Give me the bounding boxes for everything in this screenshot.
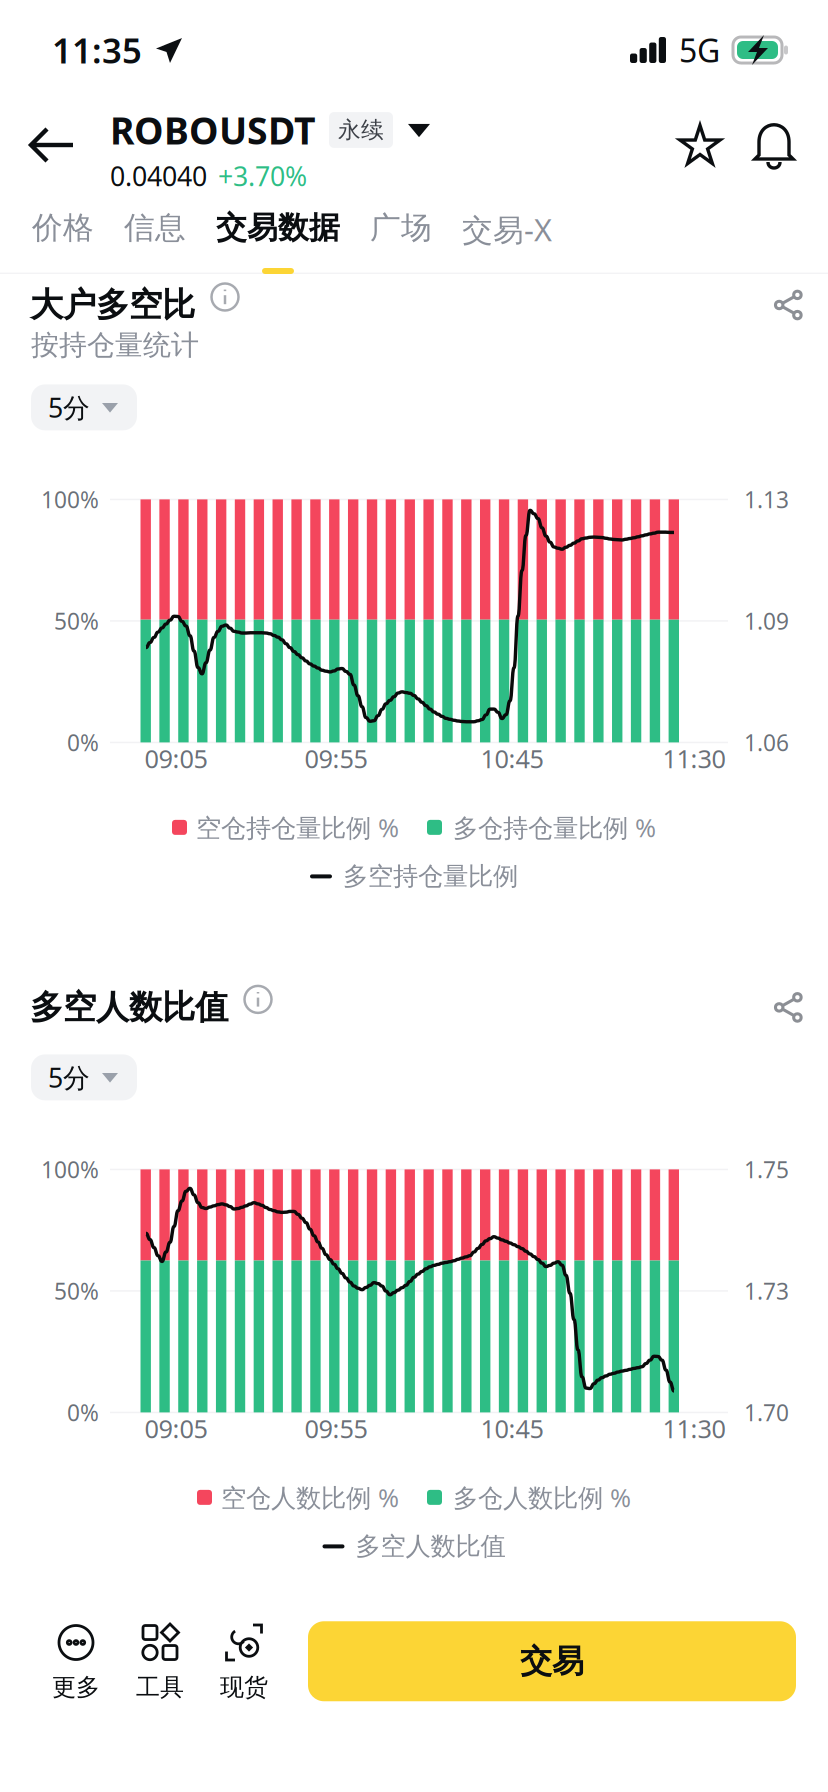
staticText: 50%: [54, 606, 99, 636]
staticText: 1.06: [744, 727, 789, 757]
staticText: 50%: [54, 1276, 99, 1306]
staticText: 1.73: [744, 1276, 789, 1306]
staticText: 空仓持仓量比例 %: [196, 811, 399, 844]
button[interactable]: 交易-X: [447, 196, 567, 274]
staticText: 5分: [48, 1060, 90, 1095]
staticText: 11:35: [52, 27, 142, 73]
staticText: 信息: [124, 209, 186, 247]
staticText: 1.13: [744, 484, 789, 514]
button[interactable]: 信息: [109, 196, 201, 274]
staticText: 大户多空比: [30, 284, 195, 325]
button[interactable]: 更多: [34, 1620, 118, 1702]
staticText: 多空人数比值: [355, 1531, 505, 1562]
button[interactable]: Share: [764, 281, 812, 329]
staticText: 10:45: [480, 742, 543, 775]
staticText: 现货: [220, 1672, 268, 1702]
staticText: 广场: [370, 209, 432, 247]
staticText: 09:55: [304, 742, 367, 775]
staticText: 多空持仓量比例: [343, 861, 518, 892]
button[interactable]: Alerts: [742, 113, 806, 177]
button[interactable]: Back: [20, 113, 84, 177]
button[interactable]: 5分: [31, 384, 137, 430]
staticText: +3.70%: [218, 158, 307, 194]
button[interactable]: 工具: [118, 1620, 202, 1702]
staticText: 10:45: [480, 1412, 543, 1445]
staticText: 永续: [338, 116, 384, 144]
staticText: 按持仓量统计: [31, 328, 199, 362]
staticText: 多仓持仓量比例 %: [453, 811, 656, 844]
button[interactable]: Favorite: [668, 113, 732, 177]
staticText: 工具: [136, 1672, 184, 1702]
staticText: 11:30: [662, 1412, 725, 1445]
staticText: 09:05: [144, 742, 207, 775]
staticText: 09:55: [304, 1412, 367, 1445]
staticText: 100%: [41, 484, 99, 514]
staticText: 11:30: [662, 742, 725, 775]
staticText: 交易: [520, 1642, 584, 1681]
staticText: 09:05: [144, 1412, 207, 1445]
button[interactable]: 交易: [308, 1621, 796, 1701]
staticText: ROBOUSDT: [110, 105, 316, 155]
button[interactable]: 现货: [202, 1620, 286, 1702]
staticText: 0%: [67, 1397, 99, 1427]
button[interactable]: 交易数据: [201, 196, 355, 274]
button[interactable]: 价格: [17, 196, 109, 274]
staticText: 交易-X: [462, 209, 552, 250]
staticText: 更多: [52, 1672, 100, 1702]
staticText: 交易数据: [216, 209, 340, 247]
staticText: 5分: [48, 390, 90, 425]
staticText: 空仓人数比例 %: [221, 1481, 399, 1514]
button[interactable]: 5分: [31, 1054, 137, 1100]
staticText: 价格: [32, 209, 94, 247]
button[interactable]: 广场: [355, 196, 447, 274]
staticText: 100%: [41, 1154, 99, 1184]
staticText: 5G: [679, 29, 720, 71]
staticText: 1.70: [744, 1397, 789, 1427]
staticText: 1.75: [744, 1154, 789, 1184]
staticText: 1.09: [744, 606, 789, 636]
staticText: 多空人数比值: [30, 987, 228, 1028]
staticText: 0%: [67, 727, 99, 757]
staticText: 多仓人数比例 %: [453, 1481, 631, 1514]
staticText: 0.04040: [110, 158, 207, 194]
button[interactable]: Share: [764, 983, 812, 1031]
